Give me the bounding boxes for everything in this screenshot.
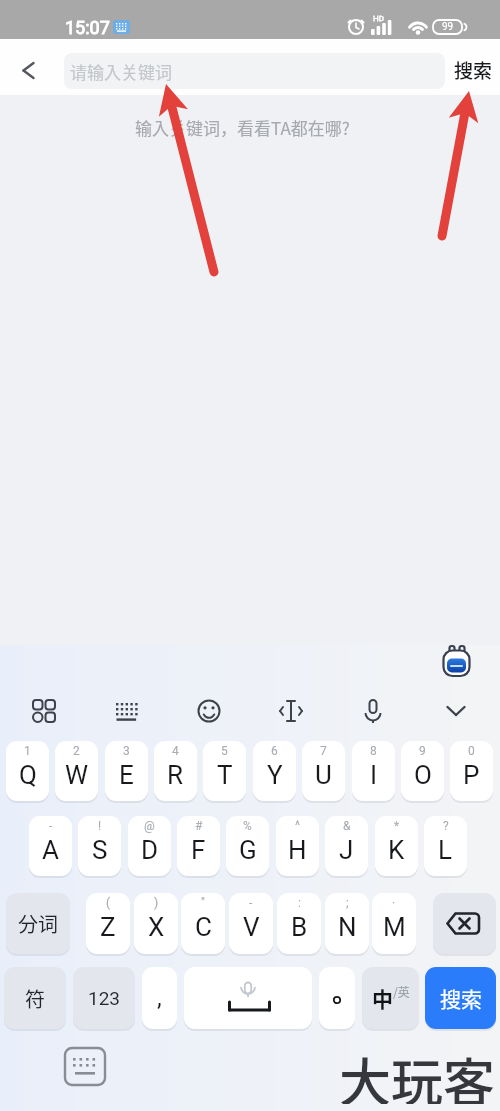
staticText: D xyxy=(141,835,159,865)
button[interactable] xyxy=(86,893,130,954)
staticText: " xyxy=(201,896,205,910)
button[interactable] xyxy=(226,816,269,876)
staticText: # xyxy=(195,819,203,833)
staticText: ( xyxy=(106,896,111,910)
staticText: J xyxy=(339,835,354,865)
button[interactable] xyxy=(128,816,171,876)
button[interactable] xyxy=(64,53,445,89)
button[interactable] xyxy=(424,816,467,876)
button[interactable] xyxy=(302,741,345,801)
staticText: 搜索 xyxy=(440,983,482,1013)
staticText: * xyxy=(394,819,400,833)
button[interactable]: , xyxy=(142,967,177,1029)
button[interactable]: 搜索 xyxy=(425,967,496,1029)
staticText: R xyxy=(167,760,184,790)
button[interactable] xyxy=(22,689,66,733)
staticText: ) xyxy=(154,896,159,910)
button[interactable] xyxy=(229,893,273,954)
button[interactable] xyxy=(319,967,355,1029)
staticText: ? xyxy=(443,819,449,833)
button[interactable] xyxy=(375,816,418,876)
button[interactable] xyxy=(325,893,369,954)
staticText: 分词 xyxy=(18,909,58,938)
button[interactable] xyxy=(184,967,312,1029)
button[interactable]: 中 xyxy=(362,967,419,1029)
staticText: 输入关键词，看看TA都在哪? xyxy=(135,115,350,139)
button[interactable] xyxy=(55,741,98,801)
button[interactable] xyxy=(6,741,49,801)
button[interactable] xyxy=(104,689,148,733)
staticText: 4 xyxy=(172,744,179,758)
staticText: G xyxy=(239,835,257,865)
staticText: E xyxy=(119,760,134,790)
staticText: 5 xyxy=(221,744,228,758)
staticText: ^ xyxy=(295,819,301,833)
staticText: X xyxy=(148,912,165,942)
staticText: K xyxy=(388,835,405,865)
staticText: M xyxy=(383,912,406,942)
staticText: T xyxy=(217,760,233,790)
staticText: · xyxy=(392,896,396,910)
staticText: 符 xyxy=(25,984,45,1013)
staticText: V xyxy=(243,912,260,942)
staticText: 99 xyxy=(442,21,454,33)
button[interactable]: 搜索 xyxy=(452,55,494,85)
button[interactable] xyxy=(372,893,416,954)
staticText: ; xyxy=(346,896,349,910)
button[interactable] xyxy=(154,741,197,801)
staticText: - xyxy=(249,896,253,910)
button[interactable] xyxy=(29,816,72,876)
staticText: : xyxy=(298,896,301,910)
button[interactable] xyxy=(352,741,395,801)
button[interactable] xyxy=(325,816,368,876)
staticText: C xyxy=(195,912,212,942)
button[interactable] xyxy=(253,741,296,801)
staticText: 大玩客 xyxy=(339,1042,496,1104)
staticText: A xyxy=(42,835,59,865)
button[interactable]: 分词 xyxy=(6,893,70,954)
staticText: U xyxy=(315,760,332,790)
staticText: 123 xyxy=(88,987,121,1009)
button[interactable] xyxy=(433,893,496,954)
staticText: , xyxy=(157,984,162,1012)
button[interactable] xyxy=(60,1042,110,1092)
staticText: 1 xyxy=(24,744,31,758)
button[interactable]: 符 xyxy=(4,967,66,1029)
button[interactable] xyxy=(134,893,178,954)
staticText: ! xyxy=(98,819,102,833)
staticText: 7 xyxy=(320,744,327,758)
staticText: 请输入关键词 xyxy=(70,59,172,84)
staticText: 9 xyxy=(419,744,426,758)
button[interactable] xyxy=(450,741,493,801)
staticText: @ xyxy=(144,819,155,833)
staticText: O xyxy=(414,760,432,790)
staticText: 15:07 xyxy=(65,17,110,35)
button[interactable] xyxy=(187,689,231,733)
staticText: N xyxy=(338,912,357,942)
button[interactable] xyxy=(105,741,148,801)
button[interactable] xyxy=(401,741,444,801)
button[interactable] xyxy=(203,741,246,801)
button[interactable] xyxy=(277,893,321,954)
button[interactable] xyxy=(269,689,313,733)
staticText: F xyxy=(191,835,206,865)
staticText: HD xyxy=(373,14,384,22)
button[interactable] xyxy=(181,893,225,954)
button[interactable] xyxy=(434,689,478,733)
button[interactable] xyxy=(351,689,395,733)
button[interactable] xyxy=(0,39,56,95)
staticText: 中 xyxy=(372,983,393,1013)
staticText: 搜索 xyxy=(454,56,493,84)
staticText: 2 xyxy=(73,744,80,758)
button[interactable]: 123 xyxy=(73,967,135,1029)
staticText: /英 xyxy=(393,983,410,1000)
staticText: Q xyxy=(19,760,37,790)
button[interactable] xyxy=(430,638,480,688)
button[interactable] xyxy=(177,816,220,876)
button[interactable] xyxy=(78,816,121,876)
button[interactable] xyxy=(276,816,319,876)
staticText: % xyxy=(243,819,252,833)
staticText: 0 xyxy=(468,744,475,758)
staticText: P xyxy=(463,760,480,790)
staticText: B xyxy=(291,912,308,942)
